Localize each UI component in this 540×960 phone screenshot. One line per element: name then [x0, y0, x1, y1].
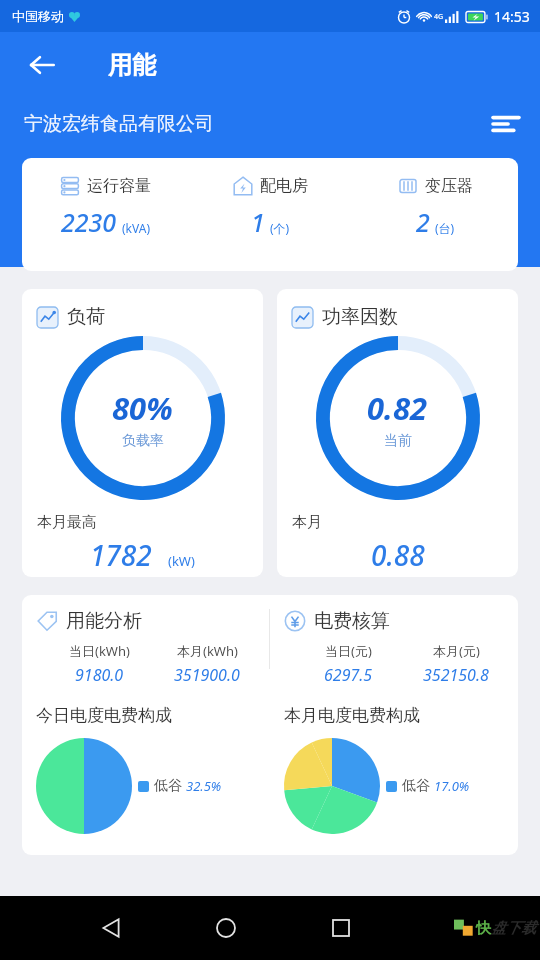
staticText: 快 [476, 919, 491, 938]
staticText: 低谷 [154, 777, 182, 795]
staticText: (个) [270, 220, 290, 236]
staticText: 1782 [90, 536, 152, 574]
staticText: 当日(元) [325, 642, 372, 660]
staticText: 变压器 [425, 176, 473, 196]
staticText: 2230 [61, 205, 117, 239]
staticText: 2 [416, 205, 430, 239]
button[interactable]: Back [16, 39, 68, 91]
staticText: 351900.0 [174, 664, 240, 686]
staticText: 负荷 [67, 305, 105, 329]
staticText: 本月(kWh) [177, 642, 238, 660]
staticText: 宁波宏纬食品有限公司 [24, 112, 214, 136]
staticText: 电费核算 [314, 609, 390, 633]
button[interactable]: 功率因数 [277, 289, 518, 577]
staticText: 配电房 [260, 176, 308, 196]
staticText: 本月 [292, 513, 322, 532]
staticText: 1 [251, 205, 265, 239]
staticText: (台) [435, 220, 455, 236]
button[interactable]: Home [202, 904, 250, 952]
button[interactable]: Back [87, 904, 135, 952]
staticText: 6297.5 [324, 664, 373, 686]
staticText: 功率因数 [322, 305, 398, 329]
staticText: 本月电度电费构成 [284, 705, 420, 726]
staticText: 0.82 [367, 387, 428, 429]
button[interactable]: 用能分析 [22, 595, 518, 855]
staticText: 当日(kWh) [69, 642, 130, 660]
staticText: 17.0% [434, 777, 470, 795]
staticText: 9180.0 [75, 664, 124, 686]
staticText: 用能 [108, 50, 156, 80]
button[interactable]: Menu [484, 102, 528, 146]
button[interactable]: 运行容量 [22, 158, 518, 271]
staticText: 本月最高 [37, 513, 97, 532]
staticText: 14:53 [494, 7, 530, 26]
staticText: 运行容量 [87, 176, 151, 196]
staticText: 80% [112, 387, 173, 429]
staticText: 中国移动 [12, 8, 64, 24]
staticText: 0.88 [371, 536, 425, 574]
button[interactable]: Recents [317, 904, 365, 952]
staticText: 负载率 [122, 432, 164, 450]
staticText: 32.5% [186, 777, 222, 795]
staticText: 4G [434, 12, 444, 22]
staticText: 盘下载 [491, 919, 536, 938]
staticText: 用能分析 [66, 609, 142, 633]
staticText: 352150.8 [423, 664, 489, 686]
staticText: 本月(元) [433, 642, 480, 660]
staticText: (kVA) [122, 220, 150, 236]
staticText: (kW) [168, 552, 195, 570]
staticText: 低谷 [402, 777, 430, 795]
button[interactable]: 负荷 [22, 289, 263, 577]
staticText: 当前 [384, 432, 412, 450]
staticText: 今日电度电费构成 [36, 705, 172, 726]
